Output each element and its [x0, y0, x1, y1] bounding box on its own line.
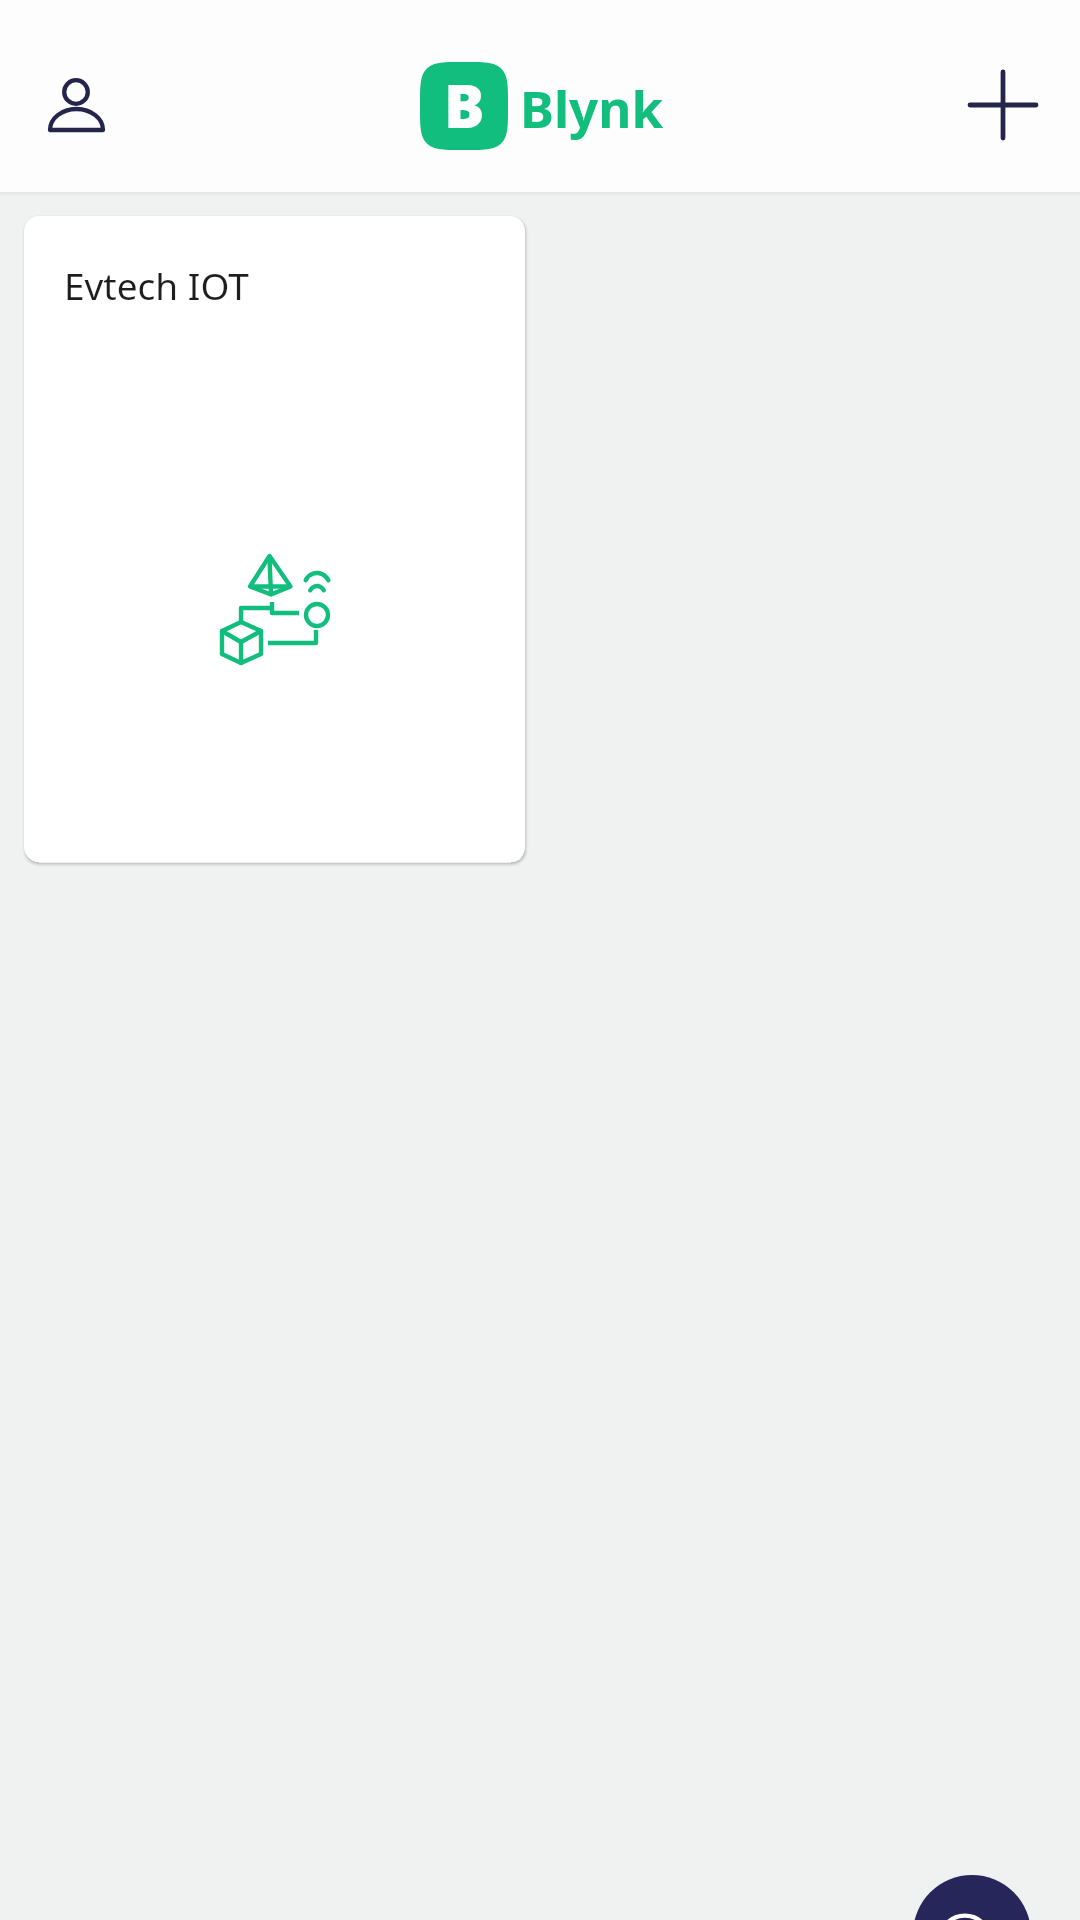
staticText: B — [444, 64, 485, 146]
staticText: Evtech IOT — [64, 260, 249, 310]
button[interactable]: Profile — [30, 50, 122, 142]
staticText: Blynk — [520, 73, 664, 142]
button[interactable]: Add — [957, 59, 1049, 151]
button[interactable]: Help — [913, 1875, 1031, 1920]
button[interactable]: Evtech IOT — [24, 216, 525, 862]
